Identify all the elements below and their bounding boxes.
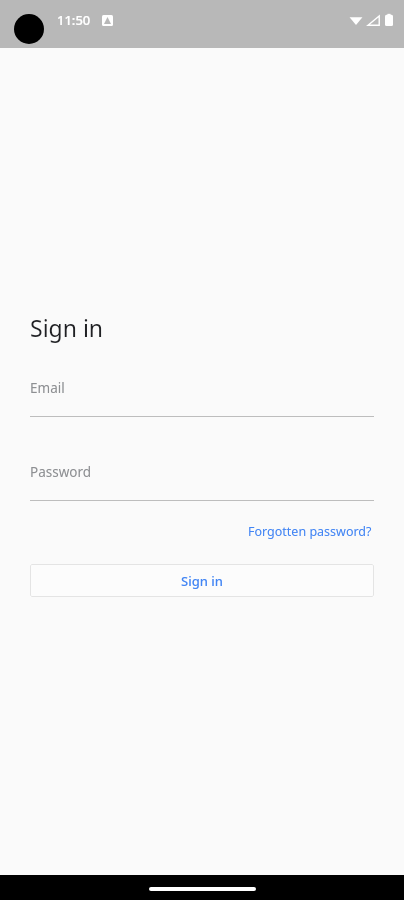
button[interactable]: Email bbox=[30, 377, 374, 399]
staticText: Sign in bbox=[30, 312, 104, 343]
button[interactable]: Password bbox=[30, 461, 374, 483]
button[interactable]: Sign in bbox=[30, 564, 374, 597]
staticText: Password bbox=[30, 463, 92, 481]
staticText: Sign in bbox=[181, 572, 223, 590]
staticText: Forgotten password? bbox=[248, 523, 372, 540]
button[interactable]: Forgotten password? bbox=[246, 520, 374, 543]
staticText: 11:50 bbox=[57, 11, 91, 29]
staticText: Email bbox=[30, 379, 65, 397]
other: Home gesture handle bbox=[149, 887, 256, 891]
